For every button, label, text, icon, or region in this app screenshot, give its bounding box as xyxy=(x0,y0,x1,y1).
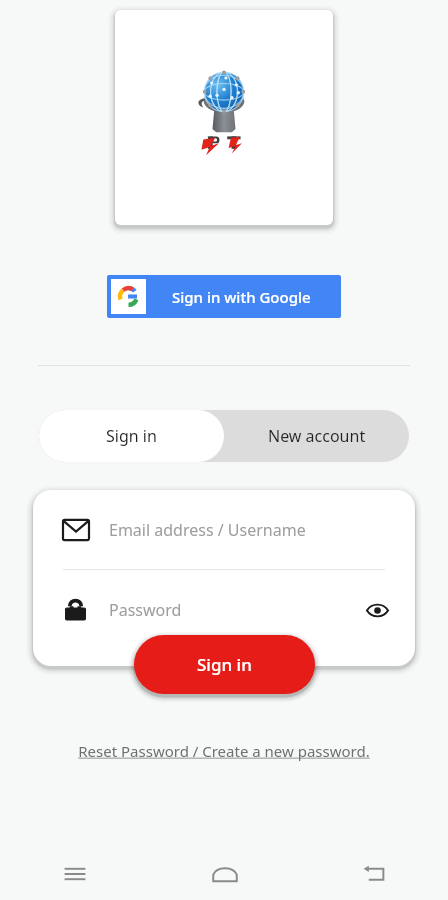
button[interactable]: Back xyxy=(299,847,448,900)
button[interactable]: Home xyxy=(150,847,299,900)
staticText: Reset Password / Create a new password. xyxy=(78,741,370,761)
staticText: New account xyxy=(268,425,366,447)
button[interactable]: Password xyxy=(33,570,415,649)
staticText: Sign in xyxy=(106,425,157,447)
button[interactable]: Sign in xyxy=(39,410,224,462)
button[interactable]: Sign in xyxy=(134,635,315,694)
button[interactable]: Recent apps xyxy=(0,847,150,900)
staticText: Email address / Username xyxy=(109,519,306,541)
staticText: Sign in xyxy=(197,653,252,676)
button[interactable]: Reset Password / Create a new password. xyxy=(70,737,378,765)
button[interactable]: Email address / Username xyxy=(33,490,415,569)
button[interactable]: Show password xyxy=(355,588,399,632)
staticText: Sign in with Google xyxy=(172,287,311,307)
button[interactable]: Sign in with Google xyxy=(107,275,341,318)
staticText: Password xyxy=(109,599,182,621)
button[interactable]: New account xyxy=(224,410,409,462)
